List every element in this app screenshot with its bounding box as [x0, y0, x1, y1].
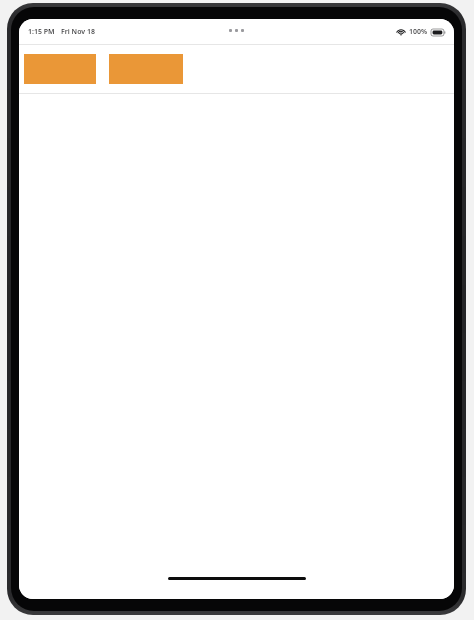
- staticText: 100%: [409, 27, 428, 37]
- button[interactable]: Home indicator: [168, 577, 306, 580]
- other: Battery 100 percent: [431, 29, 446, 36]
- staticText: 1:15 PM: [28, 27, 55, 37]
- other: Wi-Fi: [396, 28, 406, 36]
- staticText: Fri Nov 18: [61, 27, 95, 37]
- button[interactable]: Multitasking controls: [223, 25, 250, 36]
